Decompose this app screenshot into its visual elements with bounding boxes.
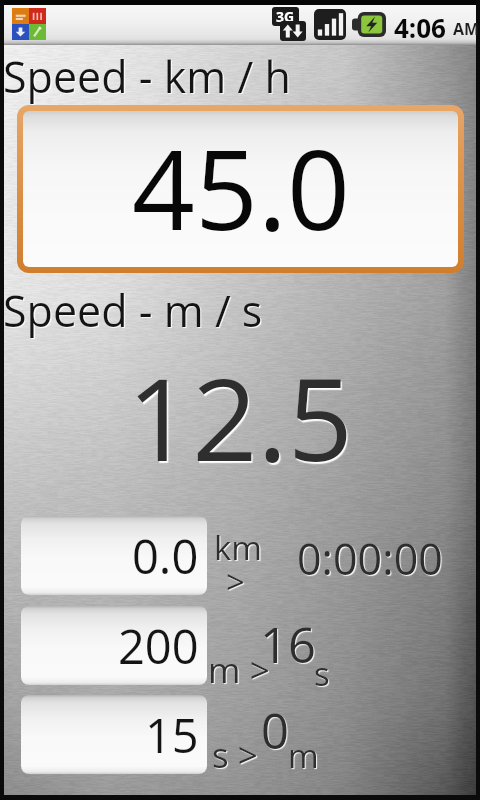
button[interactable]: 0.0	[21, 516, 207, 595]
button[interactable]: Notifications	[12, 8, 46, 40]
staticText: >	[226, 559, 245, 604]
staticText: m >	[208, 646, 270, 694]
staticText: 3G	[276, 7, 295, 26]
staticText: Speed - km / h	[3, 47, 291, 106]
staticText: 45.0	[132, 112, 350, 262]
staticText: 12.5	[127, 339, 353, 494]
staticText: 15	[145, 703, 199, 767]
button[interactable]: 15	[21, 695, 207, 774]
staticText: s	[314, 651, 330, 696]
staticText: 0:00:00	[297, 529, 443, 588]
button[interactable]: 45.0	[23, 111, 458, 267]
staticText: 0	[261, 697, 290, 764]
staticText: 4:06	[394, 10, 446, 45]
staticText: 16	[260, 611, 317, 678]
staticText: km	[214, 525, 263, 570]
button[interactable]: 200	[21, 606, 207, 685]
staticText: 200	[118, 614, 199, 678]
staticText: m	[288, 733, 319, 778]
staticText: s >	[212, 731, 258, 779]
staticText: AM	[453, 18, 480, 40]
staticText: Speed - m / s	[3, 281, 263, 340]
staticText: 0.0	[132, 524, 199, 588]
